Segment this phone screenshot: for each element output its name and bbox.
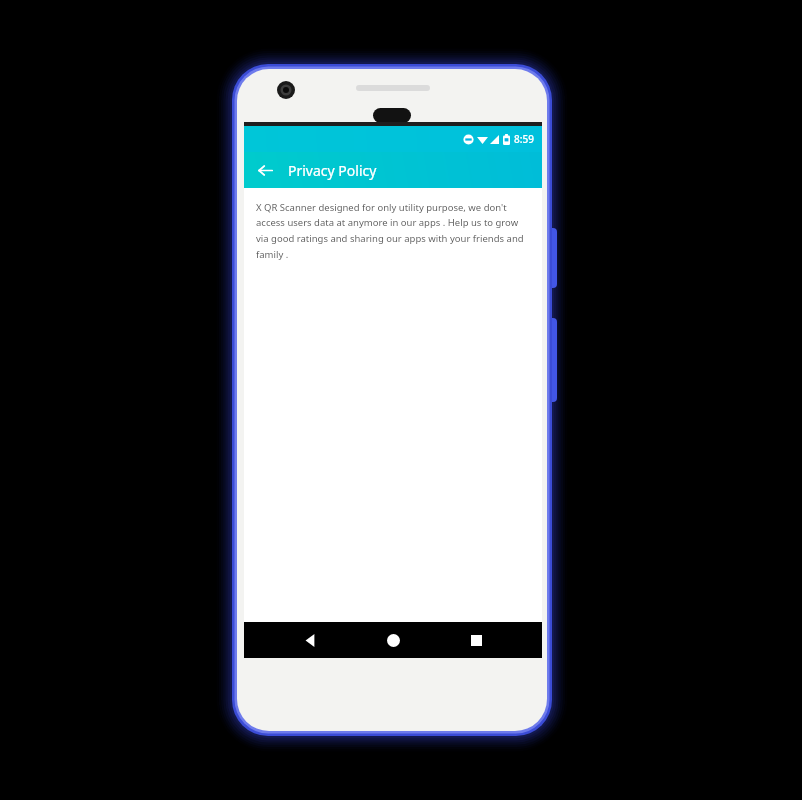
staticText: X QR Scanner designed for only utility p… — [256, 201, 530, 261]
button[interactable]: Back — [293, 623, 327, 657]
button[interactable]: Recent apps — [459, 623, 493, 657]
staticText: 8:59 — [514, 132, 534, 146]
button[interactable]: Back — [250, 155, 280, 185]
staticText: Privacy Policy — [288, 161, 377, 180]
button[interactable]: Home — [376, 623, 410, 657]
